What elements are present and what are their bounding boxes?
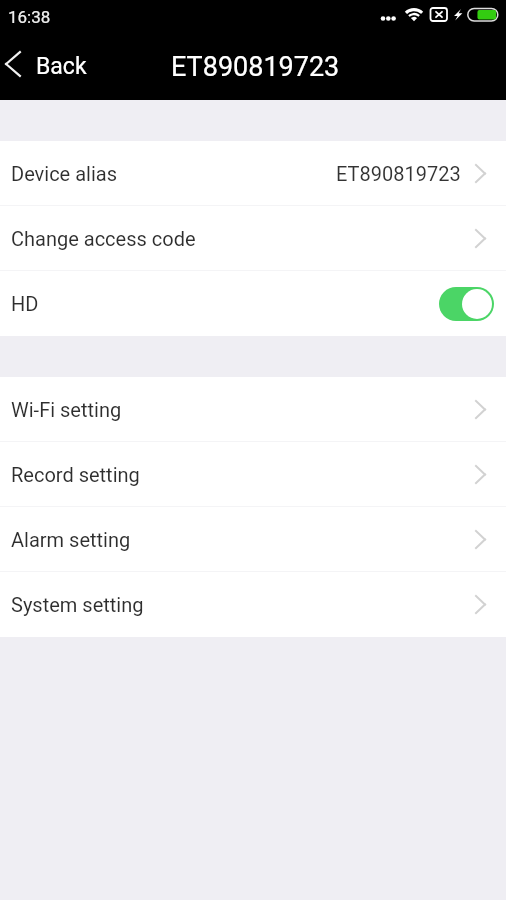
- staticText: HD: [11, 292, 39, 315]
- staticText: 16:38: [8, 7, 51, 27]
- button[interactable]: HD: [0, 271, 506, 336]
- staticText: Device alias: [11, 162, 117, 185]
- button[interactable]: Back: [0, 42, 101, 93]
- staticText: Alarm setting: [11, 528, 131, 551]
- button[interactable]: Wi-Fi setting: [0, 377, 506, 442]
- other: Back: [5, 51, 21, 77]
- staticText: ET890819723: [336, 162, 461, 185]
- staticText: Wi-Fi setting: [11, 398, 122, 421]
- button[interactable]: Alarm setting: [0, 507, 506, 572]
- button[interactable]: System setting: [0, 572, 506, 637]
- button[interactable]: Device alias: [0, 141, 506, 206]
- staticText: System setting: [11, 593, 144, 616]
- button[interactable]: Toggle HD: [439, 287, 494, 321]
- staticText: Change access code: [11, 227, 196, 250]
- staticText: ET890819723: [171, 51, 340, 83]
- button[interactable]: Record setting: [0, 442, 506, 507]
- button[interactable]: Change access code: [0, 206, 506, 271]
- staticText: Record setting: [11, 463, 140, 486]
- staticText: Back: [36, 53, 87, 80]
